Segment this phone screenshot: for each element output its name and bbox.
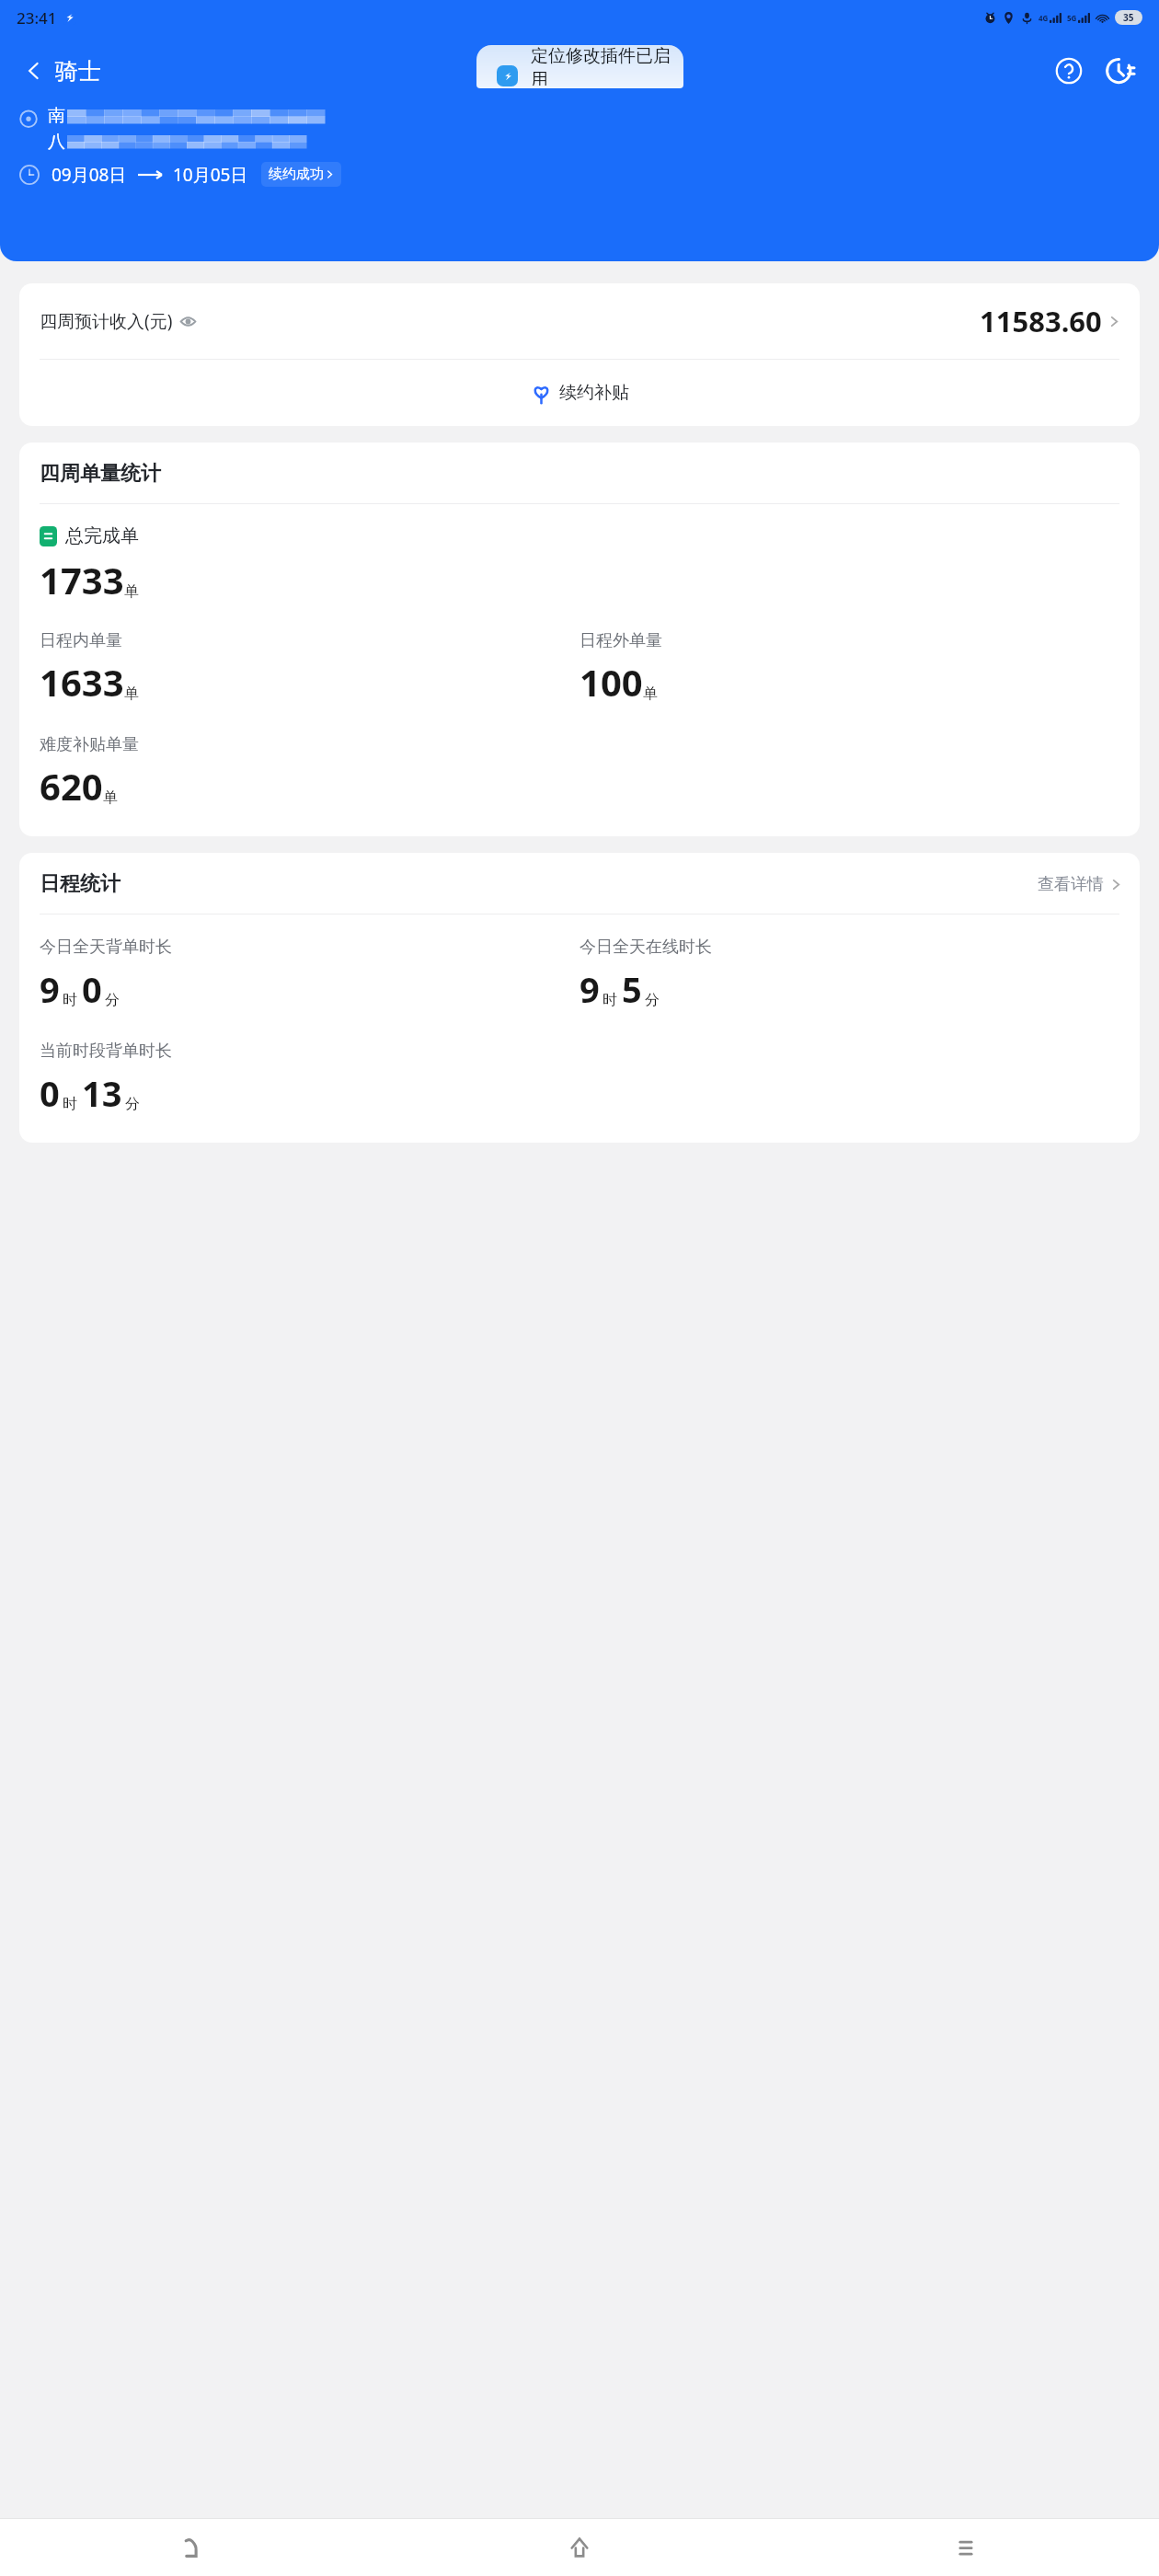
staticText: 35 bbox=[1123, 11, 1134, 24]
staticText: 日程外单量 bbox=[579, 630, 662, 651]
button[interactable]: 最近任务 bbox=[773, 2519, 1159, 2576]
staticText: 09月08日 bbox=[52, 163, 127, 187]
staticText: 八 bbox=[48, 131, 65, 153]
staticText: 总完成单 bbox=[65, 524, 139, 547]
staticText: 四周单量统计 bbox=[40, 461, 161, 487]
button[interactable]: 主页 bbox=[386, 2519, 773, 2576]
staticText: 100 bbox=[579, 657, 643, 707]
staticText: 日程统计 bbox=[40, 871, 120, 897]
staticText: 单 bbox=[643, 684, 658, 703]
staticText: 当前时段背单时长 bbox=[40, 1041, 172, 1062]
button[interactable]: 返回 bbox=[13, 50, 55, 92]
staticText: 13 bbox=[82, 1069, 122, 1117]
staticText: 5 bbox=[622, 965, 642, 1013]
staticText: 今日全天背单时长 bbox=[40, 937, 172, 958]
staticText: 0 bbox=[40, 1069, 60, 1117]
button[interactable]: 续约成功 bbox=[261, 162, 341, 187]
staticText: 四周预计收入(元) bbox=[40, 309, 173, 333]
staticText: 10月05日 bbox=[173, 163, 248, 187]
staticText: 单 bbox=[124, 684, 139, 703]
staticText: 单 bbox=[103, 788, 118, 807]
staticText: 今日全天在线时长 bbox=[579, 937, 712, 958]
staticText: 续约补贴 bbox=[559, 382, 629, 404]
staticText: 续约成功 bbox=[269, 166, 324, 183]
staticText: 日程内单量 bbox=[40, 630, 122, 651]
staticText: 11583.60 bbox=[980, 302, 1102, 340]
staticText: 0 bbox=[82, 965, 102, 1013]
staticText: 1733 bbox=[40, 555, 124, 604]
staticText: 23:41 bbox=[17, 7, 57, 29]
staticText: 时 bbox=[63, 1095, 77, 1113]
staticText: 南 bbox=[48, 105, 65, 127]
staticText: 查看详情 bbox=[1038, 874, 1104, 895]
staticText: 620 bbox=[40, 761, 103, 811]
staticText: 9 bbox=[579, 965, 600, 1013]
staticText: 5G bbox=[1067, 13, 1077, 23]
staticText: 时 bbox=[63, 991, 77, 1009]
staticText: 4G bbox=[1039, 13, 1049, 23]
button[interactable]: 历史记录 bbox=[1098, 49, 1142, 93]
button[interactable]: 四周预计收入(元) bbox=[19, 283, 1140, 359]
button[interactable]: 续约补贴 bbox=[19, 360, 1140, 426]
staticText: 定位修改插件已启用 bbox=[531, 45, 683, 86]
staticText: 分 bbox=[645, 991, 660, 1009]
button[interactable]: 查看详情 bbox=[1038, 874, 1121, 895]
staticText: 1633 bbox=[40, 657, 124, 707]
staticText: 分 bbox=[105, 991, 120, 1009]
staticText: 骑士 bbox=[55, 57, 101, 86]
staticText: 9 bbox=[40, 965, 60, 1013]
staticText: 时 bbox=[602, 991, 617, 1009]
staticText: 难度补贴单量 bbox=[40, 734, 139, 755]
staticText: 分 bbox=[125, 1095, 140, 1113]
button[interactable]: 帮助 bbox=[1047, 49, 1091, 93]
button[interactable]: 返回 bbox=[0, 2519, 386, 2576]
staticText: 单 bbox=[124, 582, 139, 601]
